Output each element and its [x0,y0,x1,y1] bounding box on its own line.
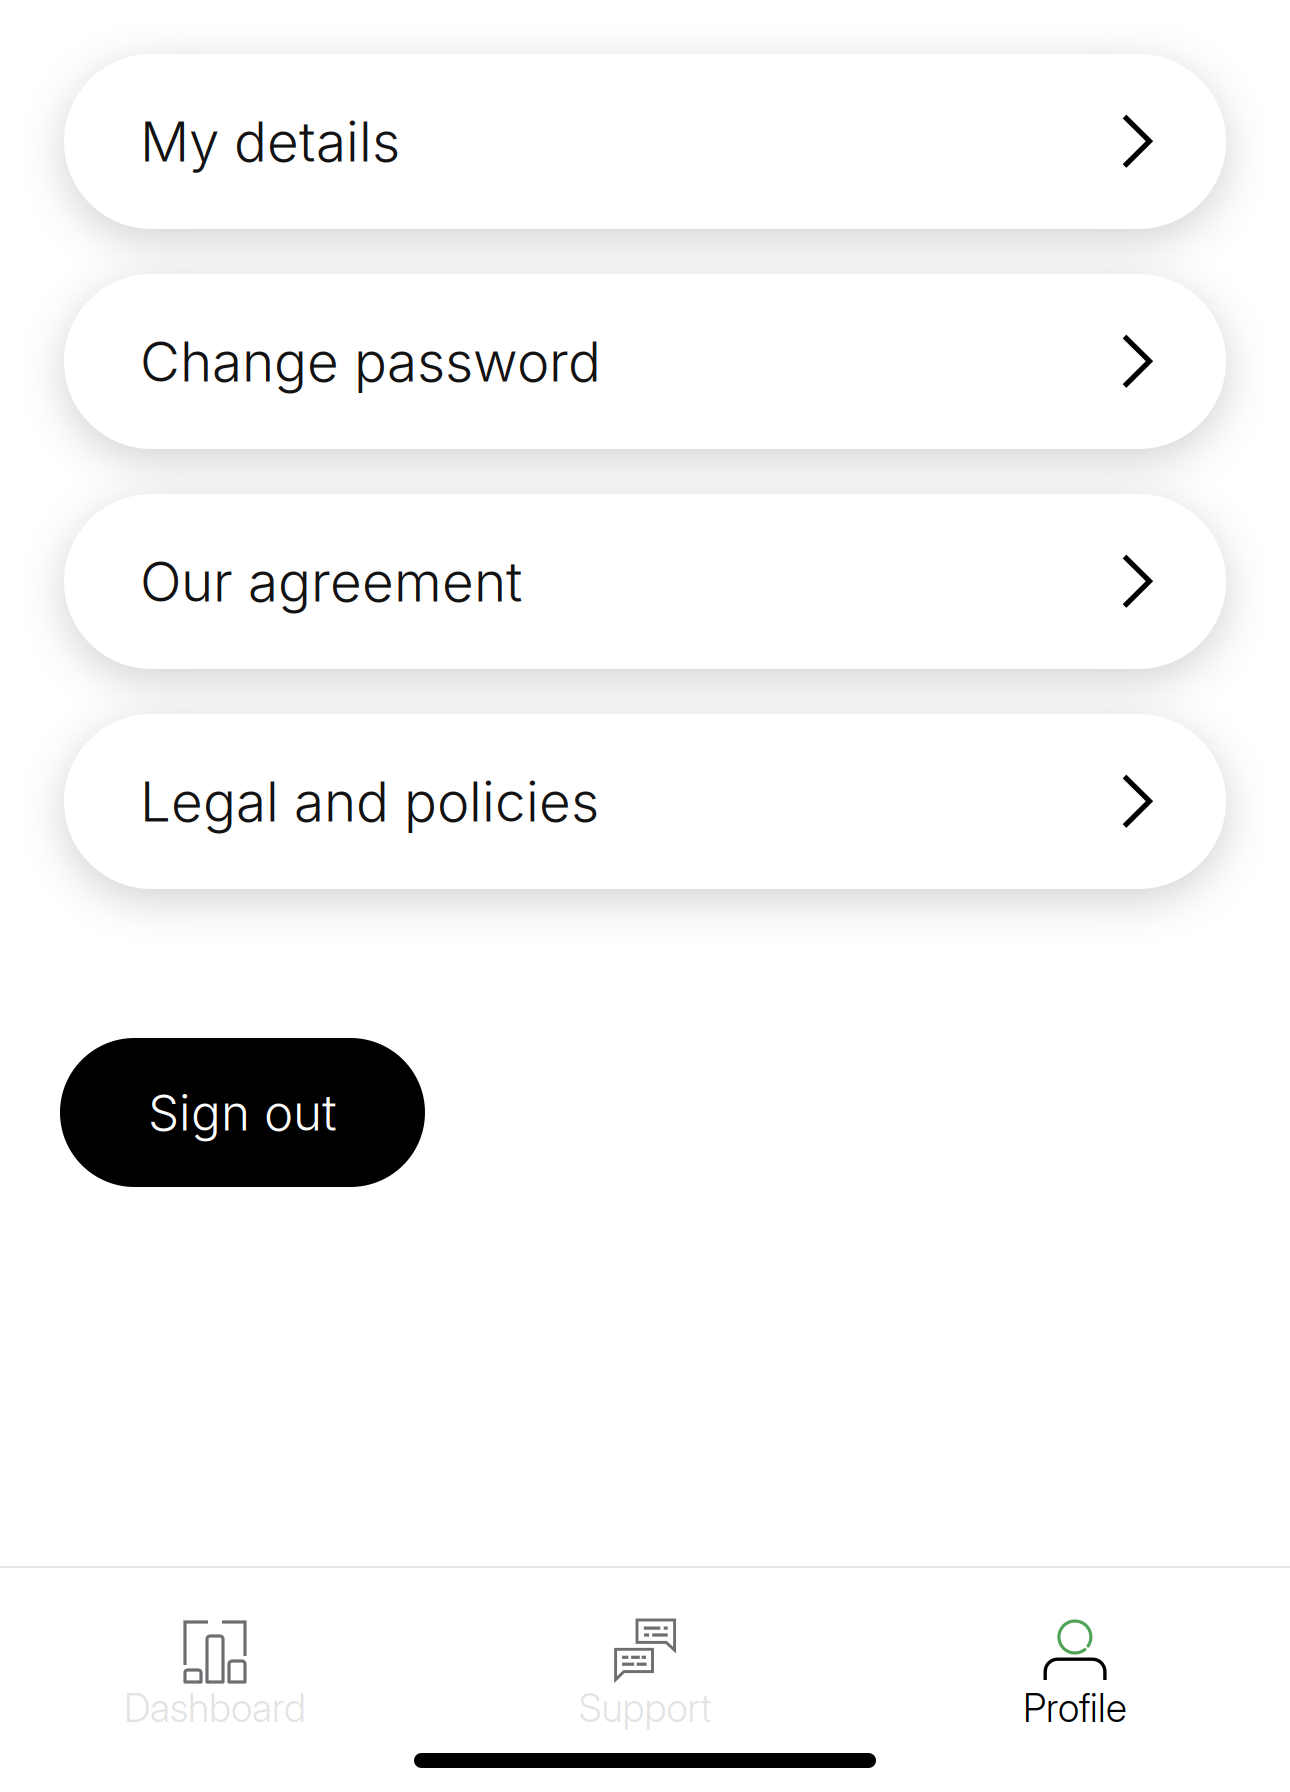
button[interactable]: My details [64,54,1226,229]
staticText: Support [578,1685,711,1731]
button[interactable]: Support [430,1612,860,1724]
staticText: Profile [1023,1685,1127,1731]
button[interactable]: Dashboard [0,1612,430,1724]
button[interactable]: Our agreement [64,494,1226,669]
staticText: Our agreement [140,548,522,614]
staticText: Legal and policies [140,768,599,834]
staticText: Dashboard [124,1685,306,1731]
staticText: My details [140,108,400,174]
button[interactable]: Profile [860,1612,1290,1724]
button[interactable]: Sign out [60,1038,425,1187]
staticText: Change password [140,328,601,394]
button[interactable]: Change password [64,274,1226,449]
button[interactable]: Legal and policies [64,714,1226,889]
staticText: Sign out [148,1083,337,1142]
